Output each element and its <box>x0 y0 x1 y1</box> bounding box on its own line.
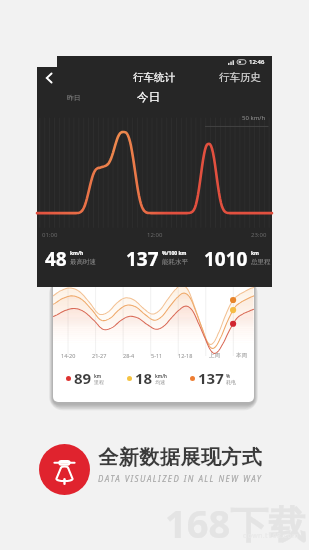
staticText: 能耗水平 <box>162 258 188 266</box>
staticText: 12-18 <box>178 352 193 359</box>
staticText: 48 <box>45 246 67 272</box>
button[interactable]: Back <box>41 70 57 86</box>
staticText: % <box>226 373 231 379</box>
button[interactable]: 昨日 <box>67 93 81 102</box>
staticText: down.t168.com <box>243 531 299 541</box>
staticText: %/100 km <box>162 250 187 257</box>
staticText: km/h <box>70 250 84 257</box>
staticText: 里程 <box>94 379 104 385</box>
staticText: DATA VISUALIZED IN ALL NEW WAY <box>98 473 263 484</box>
staticText: 全新数据展现方式 <box>98 445 262 470</box>
staticText: 12:00 <box>147 231 163 239</box>
staticText: 23:00 <box>251 231 267 239</box>
staticText: 137 <box>126 246 159 272</box>
button[interactable]: 行车历史 <box>219 71 261 84</box>
staticText: 12:46 <box>249 58 265 66</box>
staticText: 1010 <box>204 246 248 272</box>
staticText: 14-20 <box>61 352 76 359</box>
staticText: 89 <box>74 368 92 388</box>
staticText: 最高时速 <box>70 258 96 266</box>
staticText: 01:00 <box>42 231 58 239</box>
staticText: 137 <box>198 368 224 388</box>
staticText: km <box>94 373 102 379</box>
staticText: 28-4 <box>123 352 135 359</box>
staticText: 行车统计 <box>133 71 175 84</box>
button[interactable]: 今日 <box>137 90 160 104</box>
staticText: 168下载 <box>165 497 307 549</box>
button[interactable]: App logo <box>39 444 90 495</box>
staticText: km/h <box>155 373 167 379</box>
staticText: 耗电 <box>226 379 236 385</box>
staticText: 总里程 <box>251 258 271 266</box>
staticText: km <box>251 250 259 257</box>
staticText: 50 km/h <box>242 114 266 122</box>
staticText: 18 <box>135 368 153 388</box>
staticText: 上周 <box>209 352 220 359</box>
staticText: 21-27 <box>92 352 107 359</box>
staticText: 均速 <box>155 379 165 385</box>
staticText: 5-11 <box>151 352 163 359</box>
staticText: 本周 <box>236 352 247 359</box>
